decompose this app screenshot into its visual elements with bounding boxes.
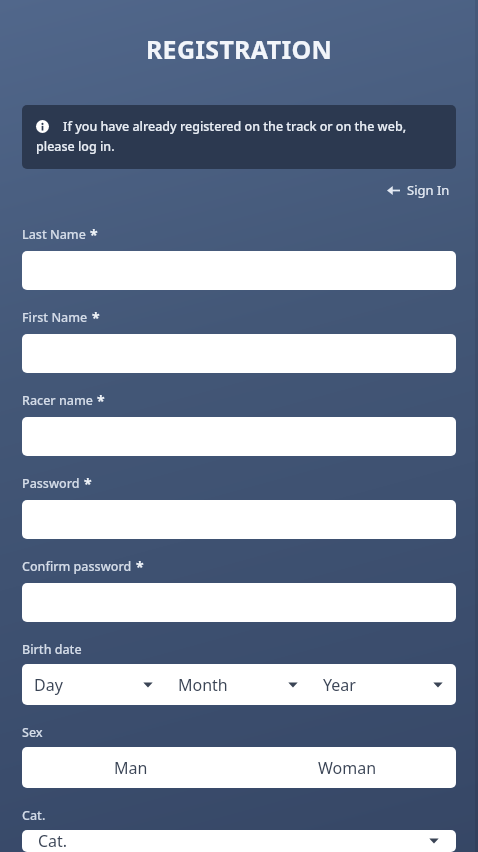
staticText: Sex [22, 724, 43, 741]
staticText: Month [178, 674, 228, 696]
staticText: Racer name [22, 392, 93, 409]
button[interactable]: Day [22, 664, 166, 705]
button[interactable]: Man [22, 747, 239, 788]
staticText: * [136, 557, 144, 576]
button[interactable]: Information [22, 105, 456, 169]
staticText: * [92, 308, 100, 327]
staticText: Password [22, 475, 80, 492]
staticText: Woman [318, 757, 377, 779]
staticText: Sign In [407, 181, 450, 199]
button[interactable] [22, 583, 456, 622]
staticText: If you have already registered on the tr… [63, 118, 407, 135]
staticText: Last Name [22, 226, 86, 243]
button[interactable] [22, 334, 456, 373]
staticText: Cat. [38, 830, 68, 852]
staticText: Day [34, 674, 63, 696]
staticText: First Name [22, 309, 88, 326]
button[interactable]: Cat. [22, 830, 456, 852]
staticText: Birth date [22, 641, 82, 658]
staticText: please log in. [36, 138, 115, 155]
button[interactable]: Woman [239, 747, 456, 788]
staticText: * [84, 474, 92, 493]
staticText: Man [114, 757, 148, 779]
staticText: * [97, 391, 105, 410]
button[interactable]: Month [166, 664, 311, 705]
staticText: Year [323, 674, 356, 696]
other: Information [36, 120, 49, 133]
staticText: Cat. [22, 807, 46, 824]
button[interactable] [22, 417, 456, 456]
button[interactable]: Year [311, 664, 456, 705]
staticText: REGISTRATION [22, 32, 456, 66]
button[interactable] [22, 500, 456, 539]
button[interactable]: Sign In [381, 177, 456, 203]
button[interactable] [22, 251, 456, 290]
staticText: Confirm password [22, 558, 132, 575]
staticText: * [90, 225, 98, 244]
